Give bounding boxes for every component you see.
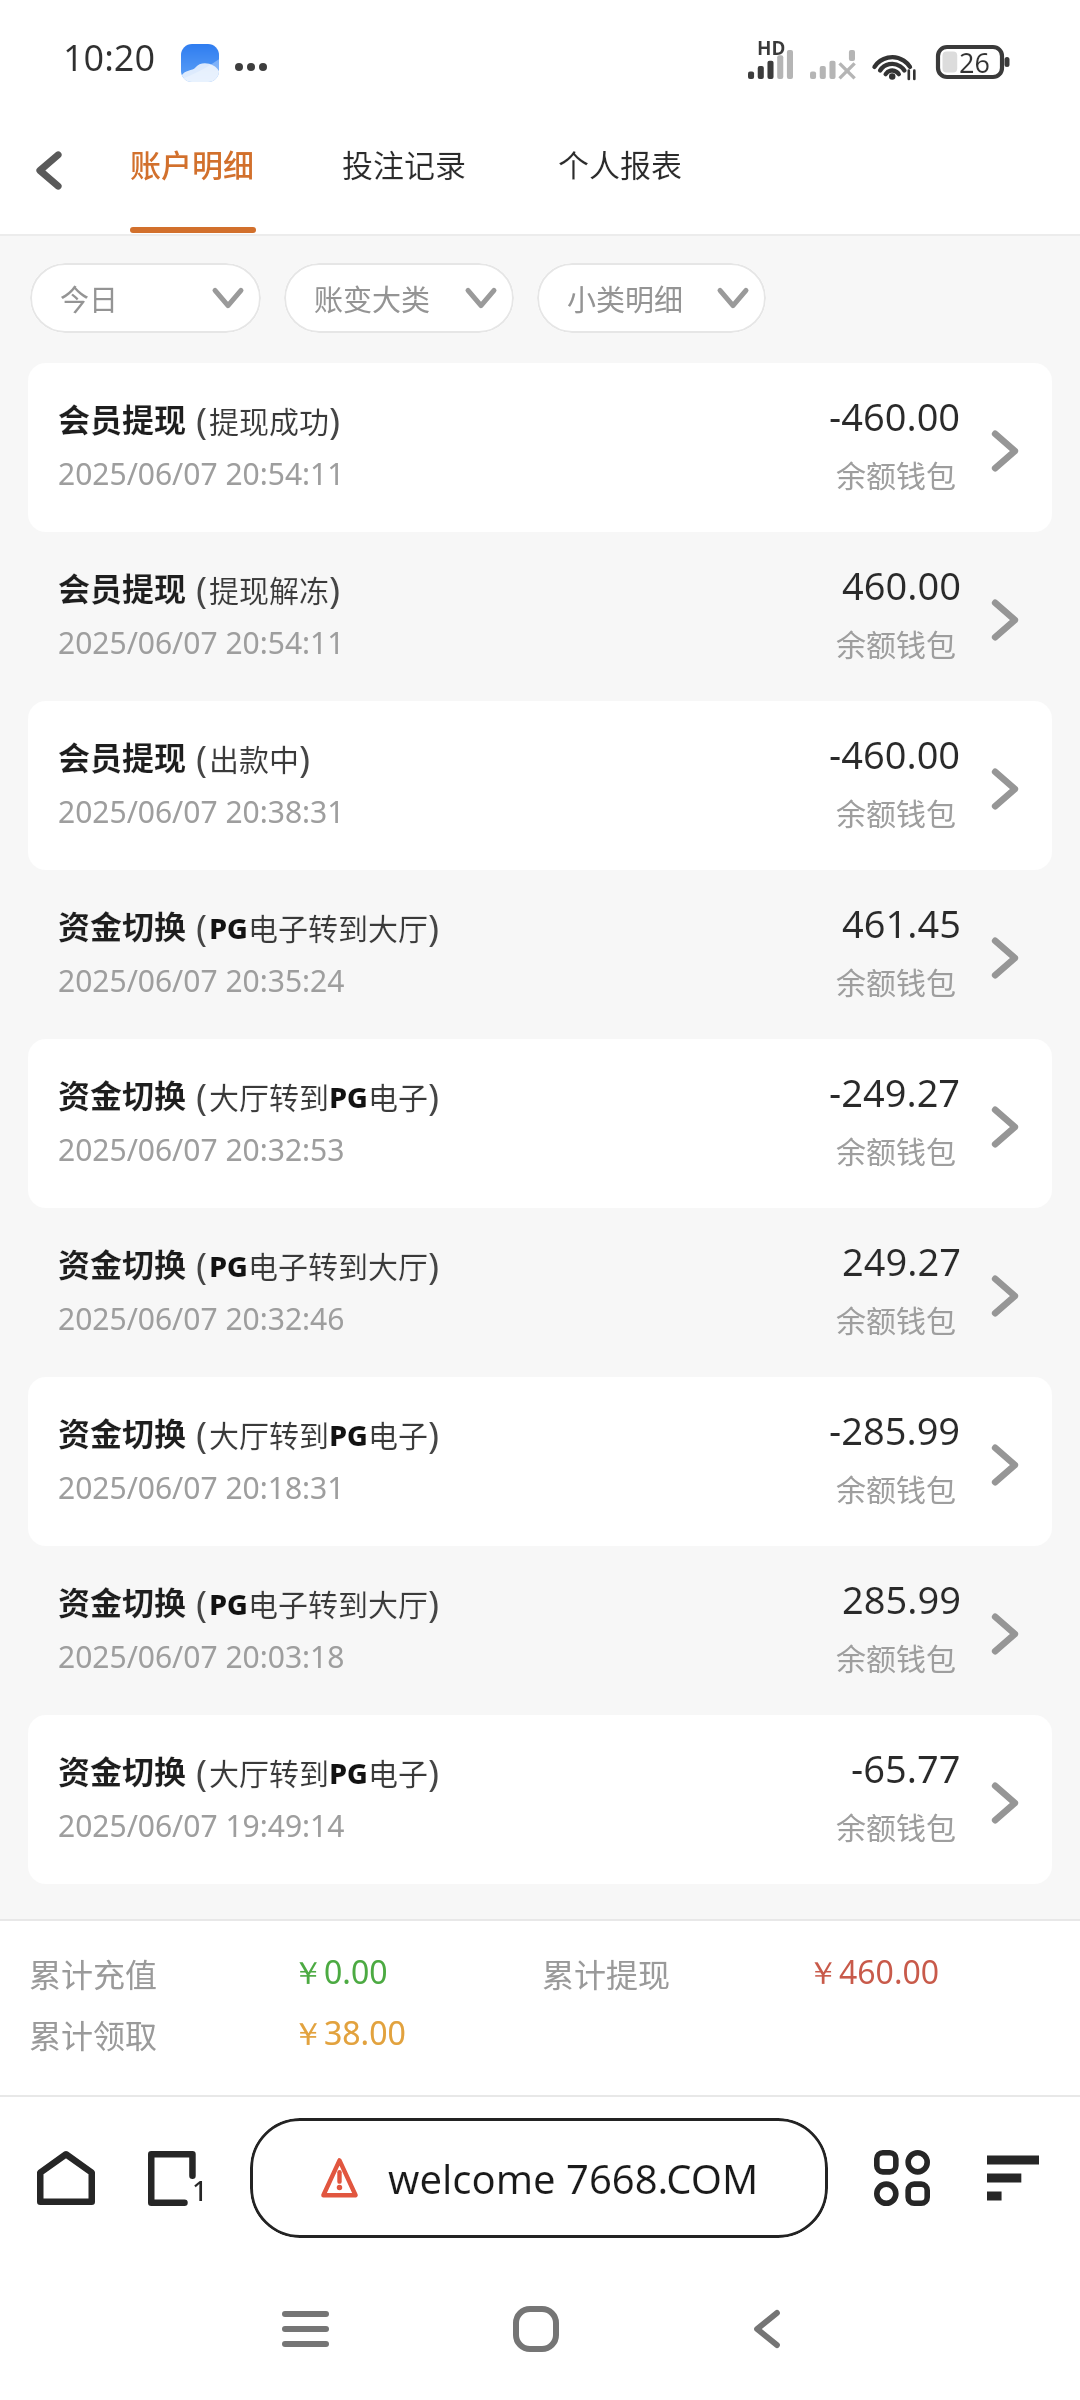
staticText: 资金切换 — [58, 1071, 187, 1117]
staticText: 余额钱包 — [836, 1297, 956, 1340]
staticText: ( — [196, 563, 208, 613]
button[interactable]: 资金切换 — [28, 1715, 1052, 1884]
button[interactable]: 账变大类 — [284, 263, 514, 333]
staticText: 今日 — [60, 277, 119, 319]
button[interactable]: 资金切换 — [28, 1039, 1052, 1208]
staticText: 2025/06/07 20:54:11 — [58, 622, 345, 663]
staticText: ￥0.00 — [292, 1950, 542, 1994]
staticText: 提现解冻 — [209, 567, 329, 610]
button[interactable]: welcome 7668.COM — [250, 2118, 828, 2238]
staticText: 大厅转到 — [209, 1750, 329, 1793]
button[interactable]: 今日 — [30, 263, 261, 333]
staticText: ) — [329, 394, 341, 444]
staticText: 10:20 — [63, 33, 156, 82]
staticText: 249.27 — [842, 1235, 961, 1287]
button[interactable]: 小类明细 — [537, 263, 766, 333]
staticText: 电子转到大厅 — [248, 1243, 428, 1286]
staticText: 资金切换 — [58, 1747, 187, 1793]
staticText: 26 — [959, 44, 990, 78]
staticText: -249.27 — [829, 1066, 961, 1118]
button[interactable]: 会员提现 — [28, 532, 1052, 701]
button[interactable]: 个人报表 — [558, 110, 684, 234]
staticText: 大厅转到 — [209, 1412, 329, 1455]
staticText: 余额钱包 — [836, 959, 956, 1002]
button[interactable]: Back — [712, 2274, 822, 2384]
staticText: ( — [196, 901, 208, 951]
button[interactable]: 会员提现 — [28, 363, 1052, 532]
button[interactable]: Menu — [970, 2135, 1056, 2221]
staticText: ) — [428, 1070, 440, 1120]
staticText: ) — [428, 1577, 440, 1627]
staticText: 460.00 — [842, 559, 961, 611]
staticText: 2025/06/07 20:18:31 — [58, 1467, 345, 1508]
staticText: 会员提现 — [58, 733, 187, 779]
staticText: 2025/06/07 20:35:24 — [58, 960, 345, 1001]
staticText: 账户明细 — [130, 141, 254, 186]
button[interactable]: Apps — [859, 2135, 945, 2221]
button[interactable]: Tabs — [133, 2135, 219, 2221]
button[interactable]: 资金切换 — [28, 1377, 1052, 1546]
staticText: 2025/06/07 20:38:31 — [58, 791, 345, 832]
button[interactable]: 资金切换 — [28, 1546, 1052, 1715]
staticText: ) — [329, 563, 341, 613]
staticText: 资金切换 — [58, 1240, 187, 1286]
staticText: PG — [329, 1077, 368, 1116]
staticText: 余额钱包 — [836, 790, 956, 833]
staticText: ) — [428, 1746, 440, 1796]
staticText: 大厅转到 — [209, 1074, 329, 1117]
staticText: 电子 — [368, 1750, 428, 1793]
staticText: welcome 7668.COM — [388, 2151, 759, 2205]
staticText: 电子转到大厅 — [248, 905, 428, 948]
staticText: 1 — [192, 2172, 208, 2209]
staticText: 电子 — [368, 1412, 428, 1455]
button[interactable]: 会员提现 — [28, 701, 1052, 870]
button[interactable]: 资金切换 — [28, 870, 1052, 1039]
staticText: 累计充值 — [29, 1950, 292, 1996]
staticText: ( — [196, 1408, 208, 1458]
button[interactable]: Recents — [250, 2274, 360, 2384]
staticText: 资金切换 — [58, 902, 187, 948]
button[interactable]: 投注记录 — [342, 110, 468, 234]
staticText: 余额钱包 — [836, 452, 956, 495]
staticText: ( — [196, 1746, 208, 1796]
staticText: 资金切换 — [58, 1578, 187, 1624]
staticText: 累计领取 — [29, 2011, 292, 2057]
staticText: HD — [757, 35, 786, 61]
staticText: ) — [428, 901, 440, 951]
staticText: 461.45 — [842, 897, 961, 949]
staticText: 2025/06/07 20:03:18 — [58, 1636, 345, 1677]
staticText: ) — [299, 732, 311, 782]
staticText: 电子转到大厅 — [248, 1581, 428, 1624]
staticText: -65.77 — [851, 1742, 961, 1794]
staticText: -460.00 — [829, 390, 961, 442]
staticText: PG — [209, 1246, 248, 1285]
button[interactable]: Home — [23, 2135, 109, 2221]
staticText: 2025/06/07 19:49:14 — [58, 1805, 345, 1846]
staticText: 账变大类 — [314, 277, 431, 319]
staticText: 余额钱包 — [836, 1635, 956, 1678]
button[interactable]: 账户明细 — [130, 110, 256, 234]
button[interactable]: Back — [0, 110, 106, 234]
staticText: 2025/06/07 20:32:46 — [58, 1298, 345, 1339]
staticText: 余额钱包 — [836, 1466, 956, 1509]
staticText: ( — [196, 732, 208, 782]
staticText: ￥38.00 — [292, 2011, 406, 2055]
staticText: PG — [329, 1753, 368, 1792]
staticText: 提现成功 — [209, 398, 329, 441]
staticText: ( — [196, 1070, 208, 1120]
staticText: PG — [329, 1415, 368, 1454]
staticText: ￥460.00 — [807, 1950, 940, 1994]
staticText: 资金切换 — [58, 1409, 187, 1455]
staticText: PG — [209, 908, 248, 947]
button[interactable]: 资金切换 — [28, 1208, 1052, 1377]
staticText: 285.99 — [842, 1573, 961, 1625]
staticText: 小类明细 — [567, 277, 684, 319]
staticText: ( — [196, 394, 208, 444]
staticText: 2025/06/07 20:54:11 — [58, 453, 345, 494]
button[interactable]: Home — [481, 2274, 591, 2384]
staticText: PG — [209, 1584, 248, 1623]
staticText: 出款中 — [209, 736, 299, 779]
staticText: 余额钱包 — [836, 1804, 956, 1847]
staticText: 会员提现 — [58, 395, 187, 441]
staticText: 累计提现 — [542, 1950, 807, 1996]
